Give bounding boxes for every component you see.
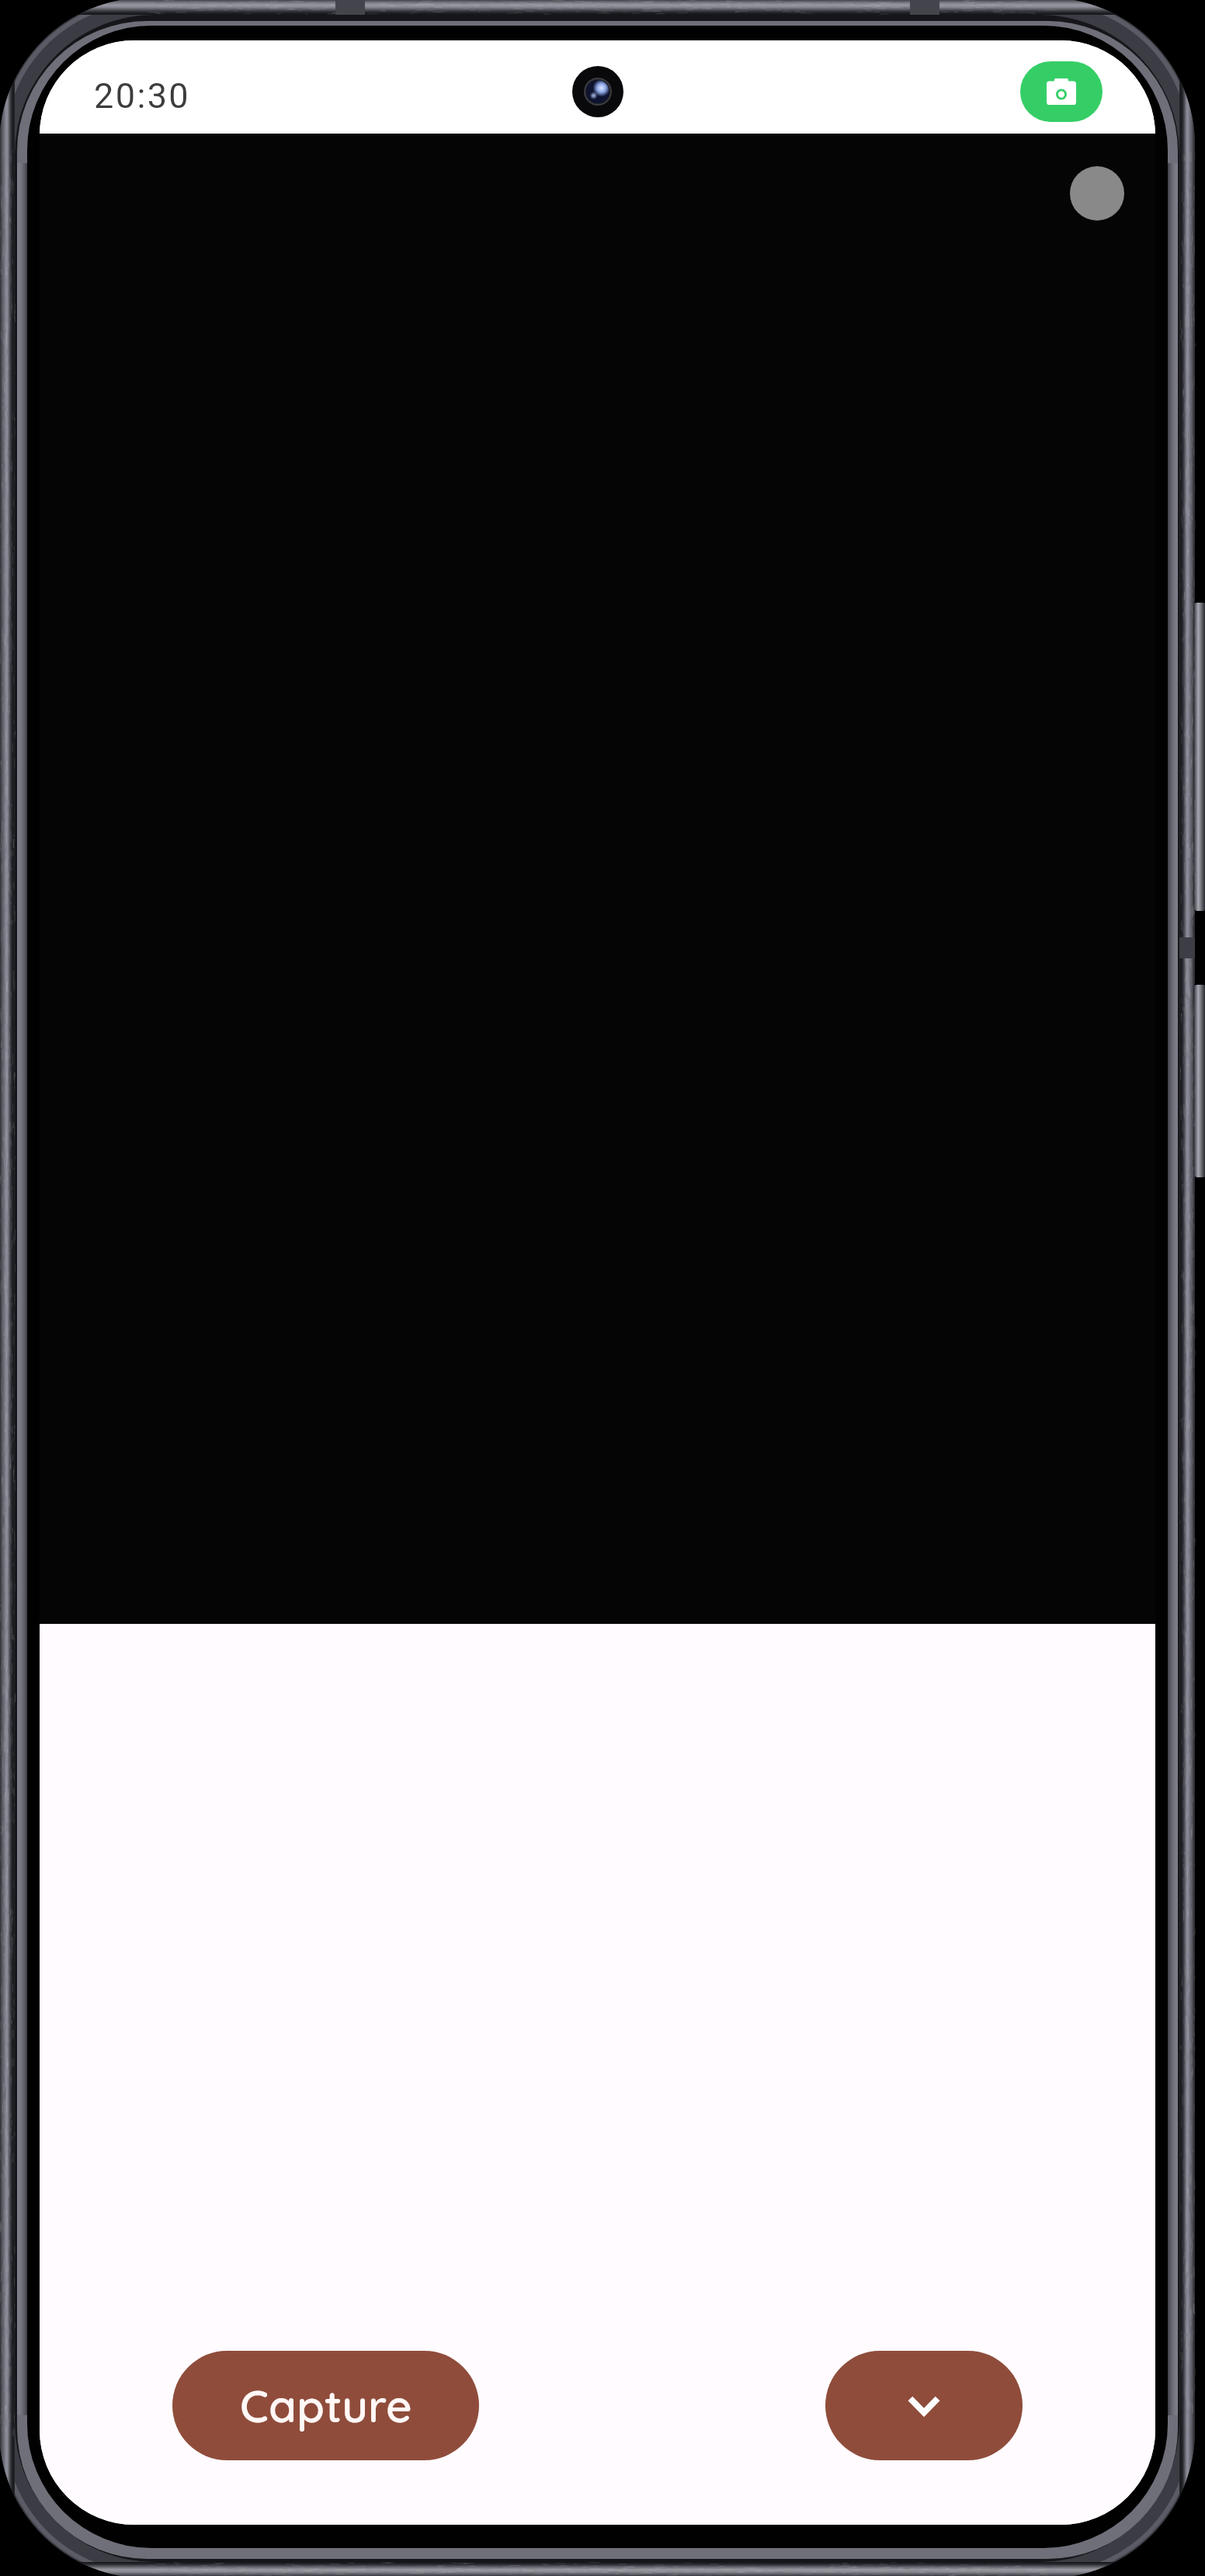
staticText: Capture — [240, 2377, 412, 2434]
button[interactable]: Show more options — [825, 2351, 1023, 2460]
staticText: 20:30 — [94, 75, 191, 116]
button[interactable]: Camera in use — [1020, 61, 1103, 122]
button[interactable]: Last captured photo — [1070, 166, 1124, 221]
button[interactable]: Capture — [172, 2351, 479, 2460]
